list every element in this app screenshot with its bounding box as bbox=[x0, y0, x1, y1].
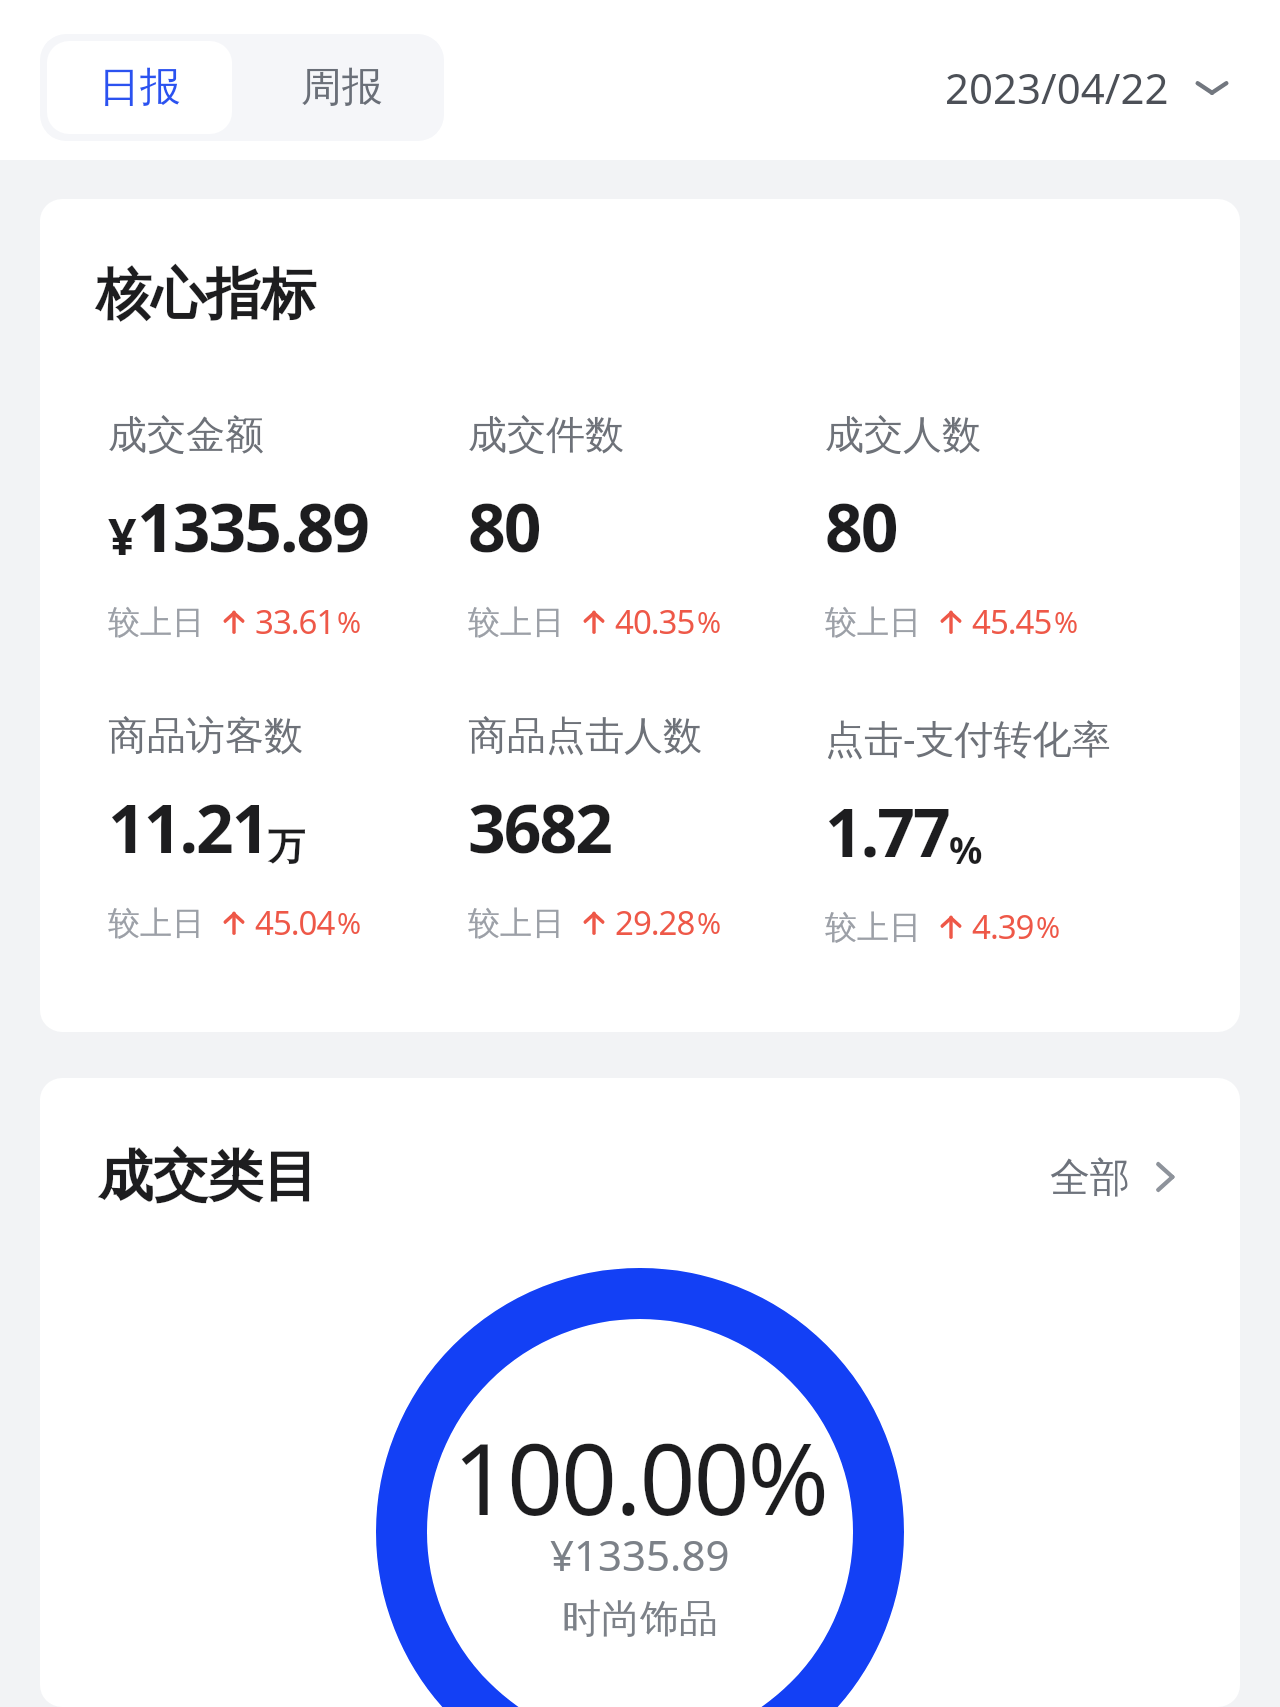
staticText: 商品点击人数 bbox=[468, 711, 702, 760]
staticText: 1335.89 bbox=[137, 481, 369, 571]
staticText: 较上日 bbox=[825, 907, 921, 947]
button[interactable]: 2023/04/22 bbox=[945, 34, 1240, 141]
staticText: 40.35 bbox=[615, 599, 695, 644]
staticText: 日报 bbox=[99, 62, 181, 114]
button[interactable]: 成交件数 bbox=[468, 410, 825, 644]
button[interactable]: 周报 bbox=[239, 34, 444, 141]
staticText: 80 bbox=[468, 481, 540, 571]
staticText: % bbox=[949, 824, 983, 874]
staticText: 周报 bbox=[301, 62, 383, 114]
staticText: ¥ bbox=[108, 502, 137, 570]
staticText: 核心指标 bbox=[96, 260, 316, 329]
button[interactable]: 日报 bbox=[47, 41, 232, 134]
staticText: 100.00% bbox=[453, 1410, 827, 1543]
staticText: % bbox=[337, 903, 362, 942]
staticText: ¥1335.89 bbox=[550, 1526, 730, 1583]
staticText: 成交类目 bbox=[98, 1142, 318, 1211]
staticText: 33.61 bbox=[255, 599, 335, 644]
staticText: 较上日 bbox=[108, 903, 204, 943]
staticText: 80 bbox=[825, 481, 897, 571]
staticText: % bbox=[697, 602, 722, 641]
button[interactable]: 点击-支付转化率 bbox=[825, 711, 1212, 949]
staticText: 45.45 bbox=[972, 599, 1052, 644]
button[interactable]: 商品点击人数 bbox=[468, 711, 825, 945]
staticText: 全部 bbox=[1050, 1152, 1130, 1202]
staticText: 较上日 bbox=[468, 602, 564, 642]
staticText: 商品访客数 bbox=[108, 711, 303, 760]
staticText: 较上日 bbox=[825, 602, 921, 642]
staticText: 2023/04/22 bbox=[945, 59, 1169, 116]
staticText: 4.39 bbox=[972, 904, 1034, 949]
button[interactable]: 成交人数 bbox=[825, 410, 1212, 644]
staticText: 成交人数 bbox=[825, 410, 981, 459]
staticText: 11.21 bbox=[108, 782, 268, 872]
other: Select date bbox=[1195, 71, 1229, 105]
button[interactable]: 商品访客数 bbox=[108, 711, 468, 945]
staticText: % bbox=[697, 903, 722, 942]
staticText: % bbox=[1036, 907, 1061, 946]
staticText: 较上日 bbox=[468, 903, 564, 943]
staticText: % bbox=[337, 602, 362, 641]
staticText: 成交金额 bbox=[108, 410, 264, 459]
staticText: 3682 bbox=[468, 782, 612, 872]
staticText: 1.77 bbox=[825, 786, 949, 876]
button[interactable]: 成交金额 bbox=[108, 410, 468, 644]
staticText: 29.28 bbox=[615, 900, 695, 945]
staticText: 45.04 bbox=[255, 900, 335, 945]
staticText: 时尚饰品 bbox=[562, 1594, 718, 1643]
staticText: 万 bbox=[268, 823, 305, 870]
other: View all categories bbox=[1148, 1160, 1182, 1194]
button[interactable]: 全部 bbox=[1050, 1152, 1182, 1202]
staticText: 成交件数 bbox=[468, 410, 624, 459]
staticText: 较上日 bbox=[108, 602, 204, 642]
staticText: 点击-支付转化率 bbox=[825, 711, 1111, 764]
staticText: % bbox=[1054, 602, 1079, 641]
